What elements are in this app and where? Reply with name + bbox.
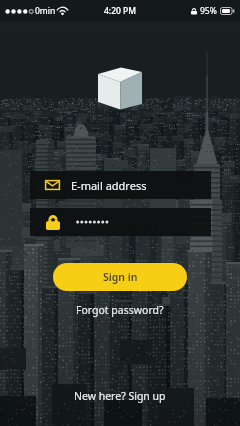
button[interactable]: New here? Sign up — [66, 386, 174, 406]
button[interactable]: Sign in — [53, 263, 187, 291]
button[interactable]: Forgot password? — [68, 300, 172, 320]
staticText: New here? Sign up — [74, 389, 166, 403]
button[interactable]: E-mail — [30, 171, 211, 199]
staticText: E-mail address — [71, 178, 147, 193]
button[interactable]: Password — [30, 208, 211, 236]
other: E-mail — [45, 180, 60, 190]
staticText: 0min — [35, 5, 56, 17]
staticText: Sign in — [103, 270, 138, 284]
staticText: Forgot password? — [76, 303, 164, 317]
other: Password — [46, 214, 60, 230]
staticText: 4:20 PM — [104, 5, 137, 17]
staticText: 95% — [200, 5, 217, 17]
